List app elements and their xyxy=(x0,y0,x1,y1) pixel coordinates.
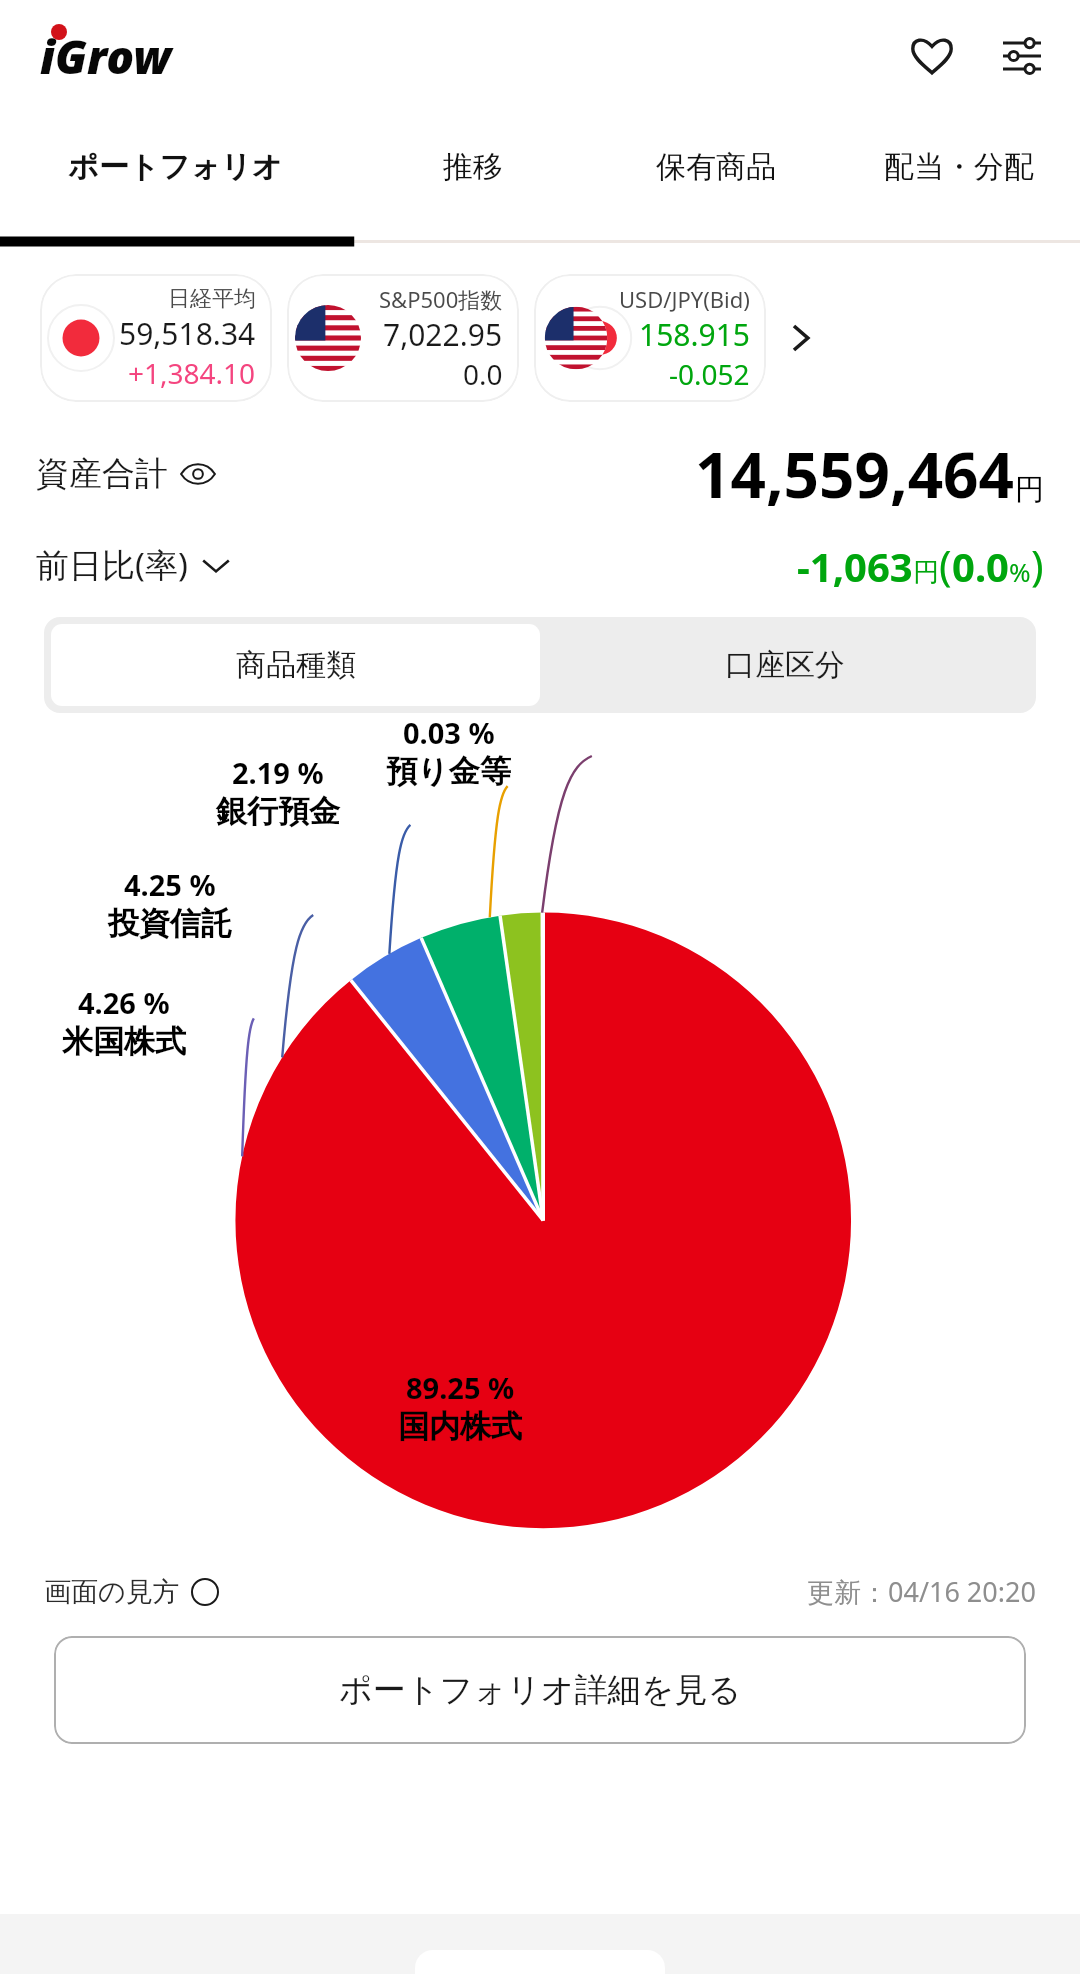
staticText: 0.0 xyxy=(463,355,503,393)
button[interactable]: Settings xyxy=(990,24,1054,88)
button[interactable]: 保有商品 xyxy=(594,112,837,248)
button[interactable]: ポートフォリオ xyxy=(0,112,351,248)
staticText: 口座区分 xyxy=(725,646,845,684)
staticText: 0.0 xyxy=(952,539,1009,593)
button[interactable]: Favorites xyxy=(900,24,964,88)
button[interactable]: 画面の見方 xyxy=(44,1575,220,1609)
staticText: 4.26 % xyxy=(78,983,170,1022)
button[interactable]: 推移 xyxy=(351,112,594,248)
staticText: 日経平均 xyxy=(168,285,256,313)
button[interactable]: 商品種類 xyxy=(51,624,540,706)
staticText: 資産合計 xyxy=(36,453,168,495)
staticText: 2.19 % xyxy=(232,753,324,792)
staticText: 0.03 % xyxy=(403,713,495,752)
staticText: ポートフォリオ詳細を見る xyxy=(339,1669,742,1711)
button[interactable]: More market indices xyxy=(772,310,828,366)
staticText: iGrow xyxy=(40,25,172,88)
staticText: 円 xyxy=(913,556,939,589)
staticText: ポートフォリオ xyxy=(68,148,283,186)
staticText: ) xyxy=(1031,536,1044,593)
staticText: 89.25 % xyxy=(406,1368,515,1407)
button[interactable]: USD/JPY(Bid) xyxy=(534,274,766,402)
staticText: 米国株式 xyxy=(62,1022,186,1061)
staticText: USD/JPY(Bid) xyxy=(619,284,750,314)
button[interactable]: S&P500指数 xyxy=(287,274,519,402)
staticText: 59,518.34 xyxy=(119,313,256,354)
staticText: -1,063 xyxy=(797,539,913,593)
button[interactable]: ポートフォリオ詳細を見る xyxy=(54,1636,1026,1744)
button[interactable]: 口座区分 xyxy=(540,624,1029,706)
staticText: 商品種類 xyxy=(236,646,356,684)
staticText: 配当・分配 xyxy=(884,148,1034,186)
staticText: 推移 xyxy=(443,148,503,186)
button[interactable]: 配当・分配 xyxy=(837,112,1080,248)
staticText: 保有商品 xyxy=(656,148,776,186)
staticText: 円 xyxy=(1015,471,1044,508)
staticText: 更新：04/16 20:20 xyxy=(807,1573,1036,1610)
button[interactable]: 日経平均 xyxy=(40,274,272,402)
staticText: -0.052 xyxy=(669,355,750,393)
staticText: 4.25 % xyxy=(124,865,216,904)
staticText: 銀行預金 xyxy=(216,792,340,831)
staticText: 7,022.95 xyxy=(383,314,503,355)
button[interactable]: 前日比(率) xyxy=(36,542,232,587)
staticText: 預り金等 xyxy=(386,752,511,791)
button[interactable]: 資産合計 xyxy=(36,453,216,495)
staticText: +1,384.10 xyxy=(128,354,256,392)
staticText: 14,559,464 xyxy=(695,432,1015,516)
staticText: S&P500指数 xyxy=(379,284,503,314)
staticText: 投資信託 xyxy=(108,904,232,943)
staticText: 前日比(率) xyxy=(36,542,188,587)
staticText: % xyxy=(1009,554,1031,589)
staticText: ( xyxy=(939,536,952,593)
staticText: 画面の見方 xyxy=(44,1575,180,1609)
staticText: 国内株式 xyxy=(398,1407,522,1446)
staticText: 158.915 xyxy=(639,314,750,355)
